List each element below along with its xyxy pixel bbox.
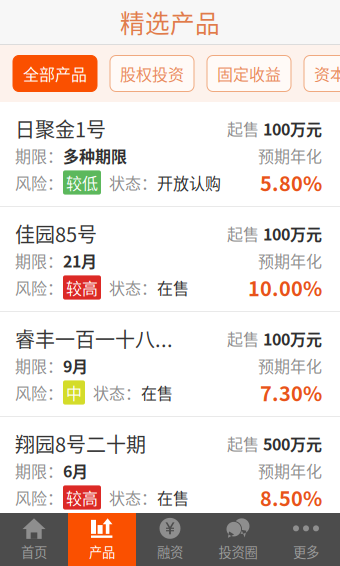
staticText: 期限： (15, 249, 63, 272)
staticText: 中 (66, 381, 82, 404)
staticText: 较高 (66, 276, 98, 299)
staticText: 风险： (15, 171, 63, 194)
staticText: 10.00% (248, 273, 322, 302)
button[interactable]: 更多 (272, 513, 340, 566)
staticText: 状态： (85, 381, 141, 404)
button[interactable]: 睿丰一百一十八... (0, 312, 340, 417)
staticText: 状态： (101, 486, 157, 509)
staticText: 9月 (63, 354, 88, 377)
staticText: 资本投资 (314, 62, 340, 85)
staticText: 期限： (15, 354, 63, 377)
staticText: 期限： (15, 459, 63, 482)
staticText: 状态： (101, 276, 157, 299)
staticText: 固定收益 (217, 62, 281, 85)
staticText: 在售 (157, 276, 189, 299)
button[interactable]: 产品 (68, 513, 136, 566)
staticText: 精选产品 (120, 4, 220, 40)
staticText: 睿丰一百一十八... (15, 324, 173, 353)
staticText: 起售 (227, 222, 259, 245)
staticText: 100万元 (263, 327, 322, 350)
staticText: 预期年化 (258, 249, 322, 272)
staticText: 5.80% (260, 168, 322, 197)
staticText: 6月 (63, 459, 88, 482)
staticText: 期限： (15, 144, 63, 167)
staticText: 风险： (15, 276, 63, 299)
button[interactable]: 日聚金1号 (0, 102, 340, 207)
staticText: 预期年化 (258, 354, 322, 377)
staticText: 全部产品 (23, 62, 87, 85)
staticText: 100万元 (263, 222, 322, 245)
staticText: 融资 (157, 542, 183, 561)
staticText: 500万元 (263, 432, 322, 455)
staticText: 在售 (141, 381, 173, 404)
button[interactable]: 首页 (0, 513, 68, 566)
button[interactable]: 融资 (136, 513, 204, 566)
staticText: 投资圈 (218, 542, 257, 561)
button[interactable]: 资本投资 (304, 55, 340, 91)
staticText: 100万元 (263, 117, 322, 140)
staticText: 8.50% (260, 483, 322, 512)
staticText: 预期年化 (258, 144, 322, 167)
button[interactable]: 翔园8号二十期 (0, 417, 340, 522)
staticText: 较低 (66, 171, 98, 194)
staticText: 起售 (227, 117, 259, 140)
button[interactable]: 全部产品 (13, 55, 97, 91)
staticText: 预期年化 (258, 459, 322, 482)
staticText: 开放认购 (157, 171, 221, 194)
button[interactable]: 佳园85号 (0, 207, 340, 312)
button[interactable]: 投资圈 (204, 513, 272, 566)
staticText: 状态： (101, 171, 157, 194)
staticText: 起售 (227, 327, 259, 350)
staticText: 风险： (15, 381, 63, 404)
staticText: 21月 (63, 249, 97, 272)
staticText: 首页 (21, 542, 47, 561)
button[interactable]: 固定收益 (207, 55, 291, 91)
staticText: 较高 (66, 486, 98, 509)
staticText: 翔园8号二十期 (15, 429, 146, 458)
button[interactable]: 股权投资 (110, 55, 194, 91)
staticText: 产品 (89, 542, 115, 561)
staticText: 风险： (15, 486, 63, 509)
staticText: 更多 (293, 542, 319, 561)
staticText: 7.30% (260, 378, 322, 407)
staticText: 多种期限 (63, 144, 127, 167)
staticText: 日聚金1号 (15, 114, 106, 143)
staticText: 起售 (227, 432, 259, 455)
staticText: 股权投资 (120, 62, 184, 85)
staticText: 佳园85号 (15, 219, 97, 248)
staticText: 在售 (157, 486, 189, 509)
